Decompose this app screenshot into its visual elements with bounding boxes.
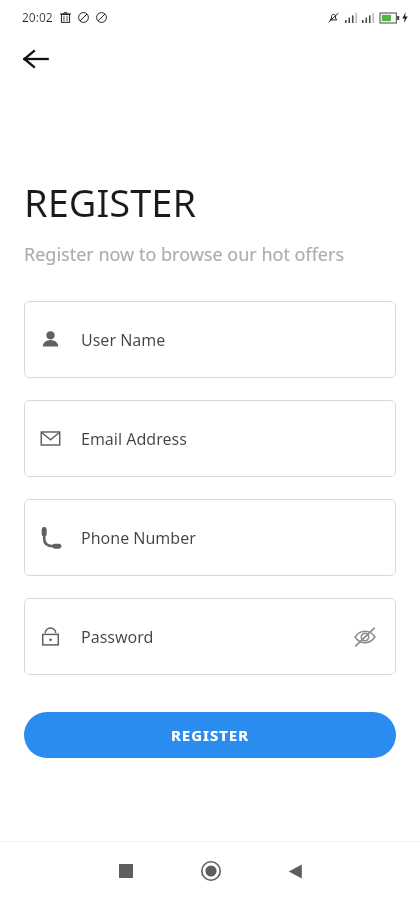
- button[interactable]: Recent apps: [83, 842, 168, 900]
- button[interactable]: Home: [168, 842, 253, 900]
- staticText: Phone Number: [81, 527, 196, 549]
- staticText: Password: [81, 626, 154, 648]
- button[interactable]: Back: [253, 842, 338, 900]
- button[interactable]: Show password: [350, 622, 380, 652]
- staticText: 20:02: [22, 9, 53, 25]
- staticText: REGISTER: [171, 725, 250, 745]
- staticText: Email Address: [81, 428, 187, 450]
- button[interactable]: User Name: [24, 301, 396, 378]
- button[interactable]: Password: [24, 598, 396, 675]
- staticText: User Name: [81, 329, 166, 351]
- staticText: REGISTER: [24, 176, 197, 228]
- staticText: Register now to browse our hot offers: [24, 242, 345, 267]
- button[interactable]: Phone Number: [24, 499, 396, 576]
- button[interactable]: Email Address: [24, 400, 396, 477]
- button[interactable]: REGISTER: [24, 712, 396, 758]
- button[interactable]: Back: [14, 37, 58, 81]
